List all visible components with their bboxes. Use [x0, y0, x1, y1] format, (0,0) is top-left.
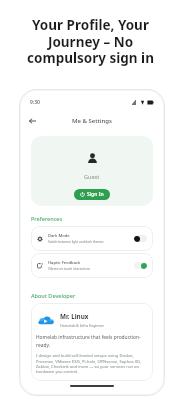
staticText: I design and build self-hosted setups us… — [36, 353, 150, 374]
staticText: Haptic Feedback — [48, 260, 81, 266]
button[interactable]: Dark Mode — [31, 226, 153, 251]
staticText: Me & Settings — [72, 117, 112, 125]
staticText: Preferences — [31, 215, 63, 222]
staticText: Homelab infrastructure that feels produc… — [36, 334, 150, 349]
button[interactable]: Sign In — [74, 189, 110, 200]
button[interactable]: Haptic Feedback — [31, 253, 153, 278]
staticText: Vibrate on touch interactions — [48, 267, 91, 271]
staticText: Mr. Linux — [60, 312, 89, 321]
staticText: Sign In — [87, 191, 104, 198]
staticText: Dark Mode — [48, 233, 70, 239]
button[interactable]: Haptic Feedback — [134, 262, 147, 269]
staticText: Homelab & Infra Engineer — [60, 323, 105, 328]
button[interactable]: Dark Mode — [134, 235, 147, 242]
staticText: Your Profile, Your Journey – No compulso… — [14, 16, 167, 67]
staticText: About Developer — [31, 292, 76, 299]
staticText: Switch between light and dark themes — [48, 240, 104, 244]
staticText: Guest — [84, 173, 100, 180]
button[interactable]: Back — [25, 114, 39, 128]
staticText: 9:30 — [30, 99, 40, 106]
button[interactable]: Mr. Linux — [31, 303, 153, 381]
